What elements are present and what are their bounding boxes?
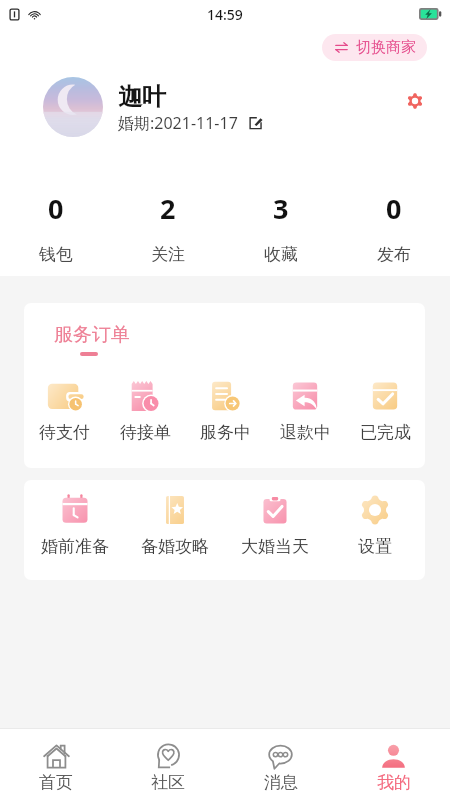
staticText: 2	[160, 190, 176, 227]
staticText: 设置	[358, 536, 392, 557]
staticText: 退款中	[280, 422, 331, 443]
button[interactable]: 首页	[0, 729, 112, 800]
button[interactable]: 0	[0, 190, 112, 265]
button[interactable]: 社区	[112, 729, 224, 800]
staticText: 社区	[151, 772, 185, 793]
staticText: 关注	[151, 244, 185, 265]
staticText: 备婚攻略	[141, 536, 209, 557]
button[interactable]: 备婚攻略	[125, 494, 225, 557]
button[interactable]: Settings	[400, 86, 429, 115]
button[interactable]: 服务中	[185, 379, 265, 443]
button[interactable]: 0	[337, 190, 450, 265]
staticText: 0	[48, 190, 64, 227]
staticText: 首页	[39, 772, 73, 793]
button[interactable]: 2	[112, 190, 224, 265]
staticText: 服务中	[200, 422, 251, 443]
button[interactable]: 切换商家	[322, 34, 427, 61]
staticText: 服务订单	[54, 323, 130, 347]
staticText: 钱包	[39, 244, 73, 265]
button[interactable]: 设置	[325, 494, 425, 557]
staticText: 婚期:2021-11-17	[118, 112, 238, 134]
staticText: 14:59	[207, 5, 243, 24]
staticText: 消息	[264, 772, 298, 793]
staticText: 我的	[377, 772, 411, 793]
button[interactable]: 消息	[224, 729, 337, 800]
staticText: 待接单	[120, 422, 171, 443]
staticText: 大婚当天	[241, 536, 309, 557]
staticText: 已完成	[360, 422, 411, 443]
staticText: 切换商家	[356, 38, 416, 57]
button[interactable]: Edit wedding date	[247, 114, 265, 132]
staticText: 发布	[377, 244, 411, 265]
button[interactable]: 3	[224, 190, 337, 265]
staticText: 3	[273, 190, 289, 227]
staticText: 收藏	[264, 244, 298, 265]
staticText: 0	[386, 190, 402, 227]
button[interactable]: 我的	[337, 729, 450, 800]
button[interactable]: 退款中	[265, 379, 345, 443]
button[interactable]: 婚前准备	[24, 494, 125, 557]
button[interactable]: 已完成	[345, 379, 425, 443]
button[interactable]: Avatar	[43, 77, 103, 137]
staticText: 婚前准备	[41, 536, 109, 557]
staticText: 待支付	[39, 422, 90, 443]
button[interactable]: 待支付	[24, 379, 105, 443]
staticText: 迦叶	[118, 82, 166, 112]
button[interactable]: 大婚当天	[225, 494, 325, 557]
button[interactable]: 待接单	[105, 379, 185, 443]
